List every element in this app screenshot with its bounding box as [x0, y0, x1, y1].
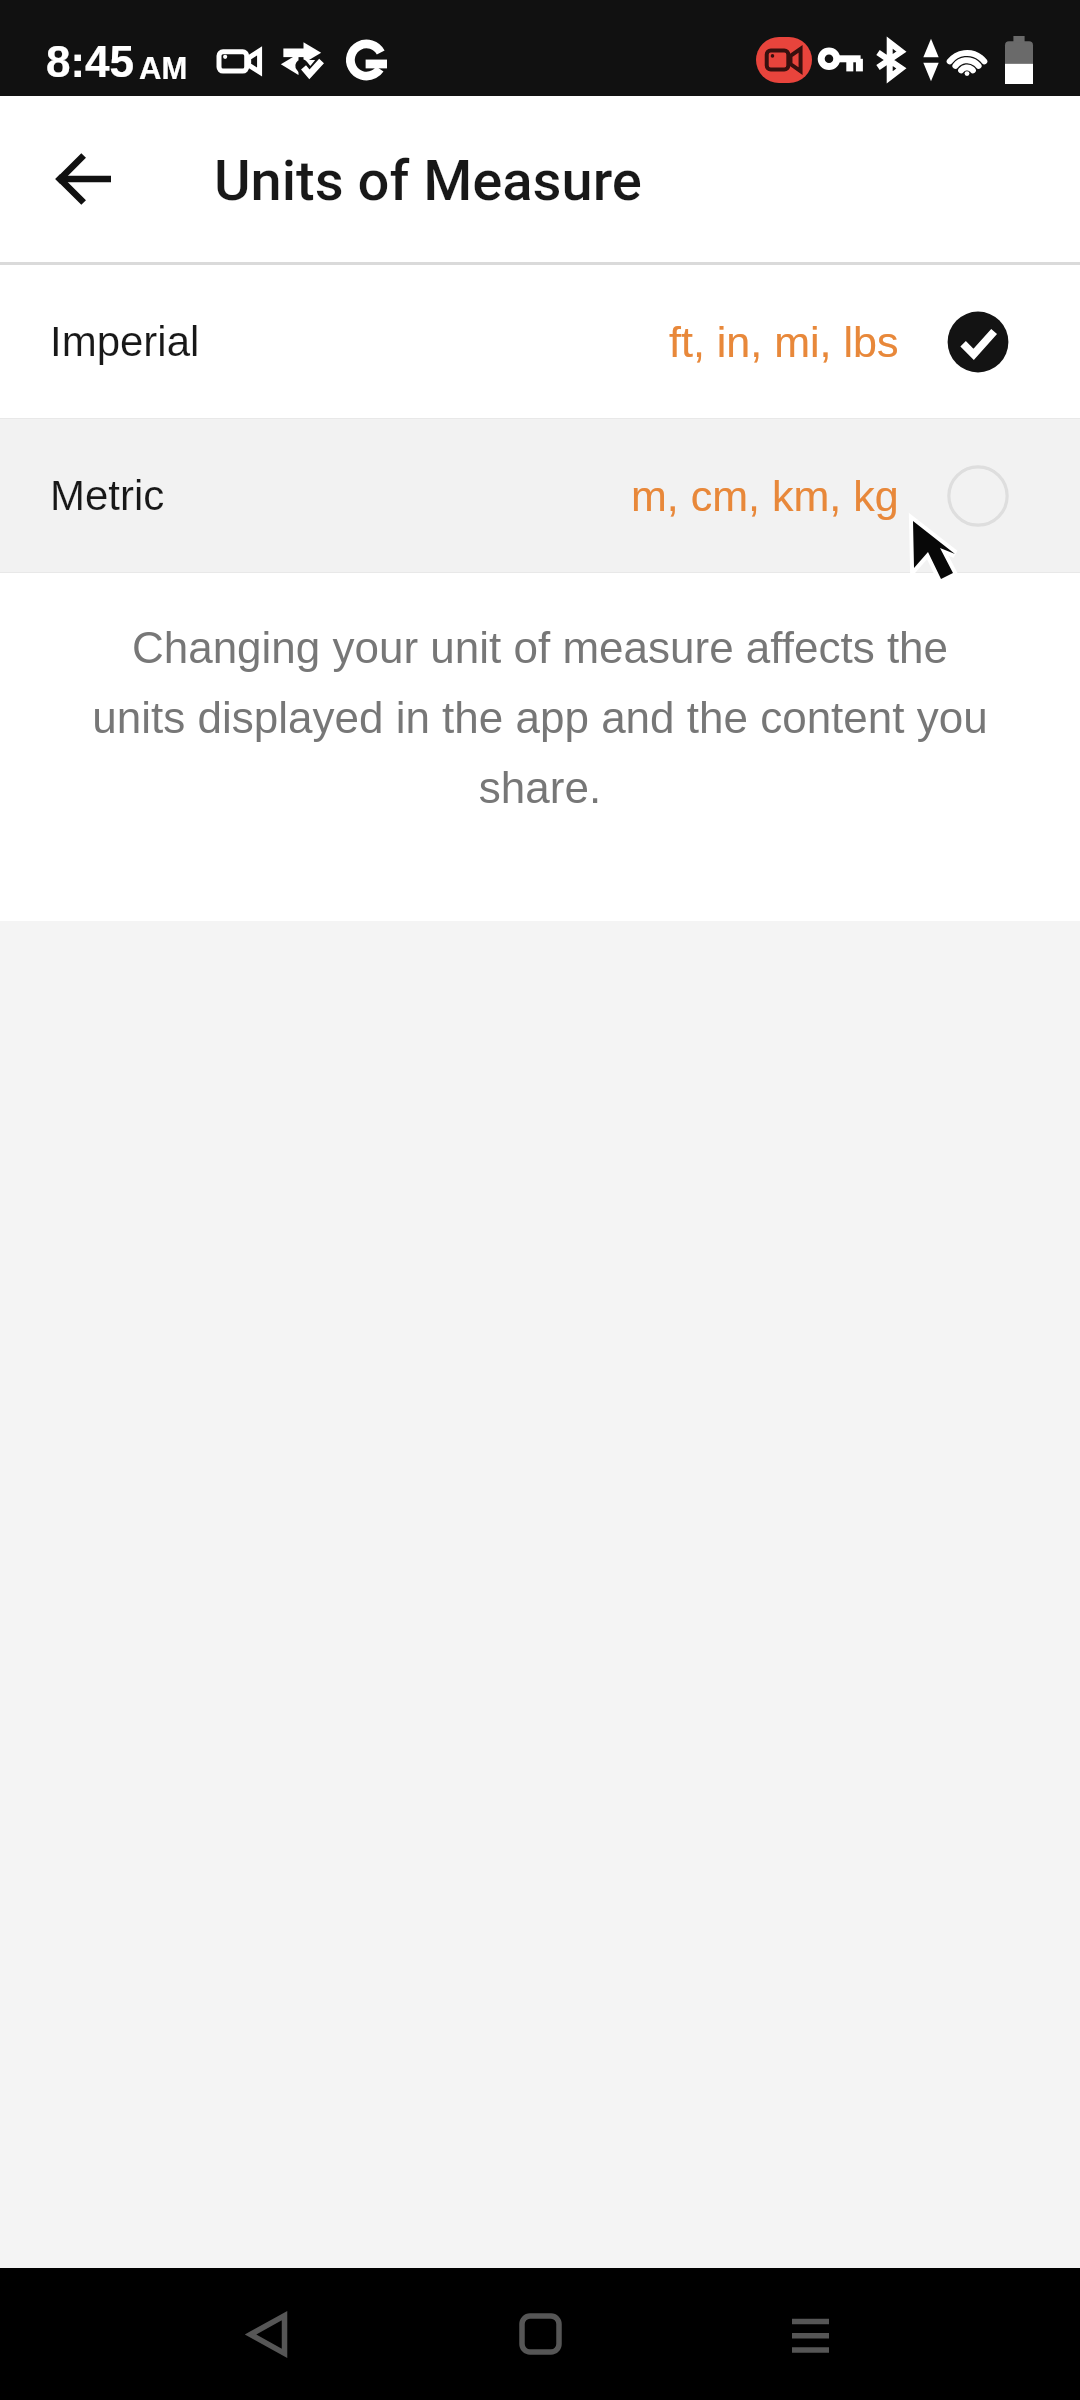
staticText: 8:45 [46, 37, 135, 86]
staticText: Metric [50, 472, 165, 519]
button[interactable]: Imperial [0, 265, 1080, 418]
button[interactable]: Home [460, 2268, 620, 2400]
button[interactable]: Metric [0, 419, 1080, 572]
staticText: Units of Measure [214, 148, 642, 214]
staticText: ft, in, mi, lbs [669, 318, 899, 366]
button[interactable]: Recent apps [730, 2268, 890, 2400]
button[interactable]: Back [187, 2268, 347, 2400]
staticText: Changing your unit of measure affects th… [89, 623, 991, 812]
button[interactable]: Back [26, 121, 142, 237]
staticText: Imperial [50, 318, 200, 365]
staticText: m, cm, km, kg [631, 472, 899, 520]
staticText: AM [139, 51, 188, 86]
